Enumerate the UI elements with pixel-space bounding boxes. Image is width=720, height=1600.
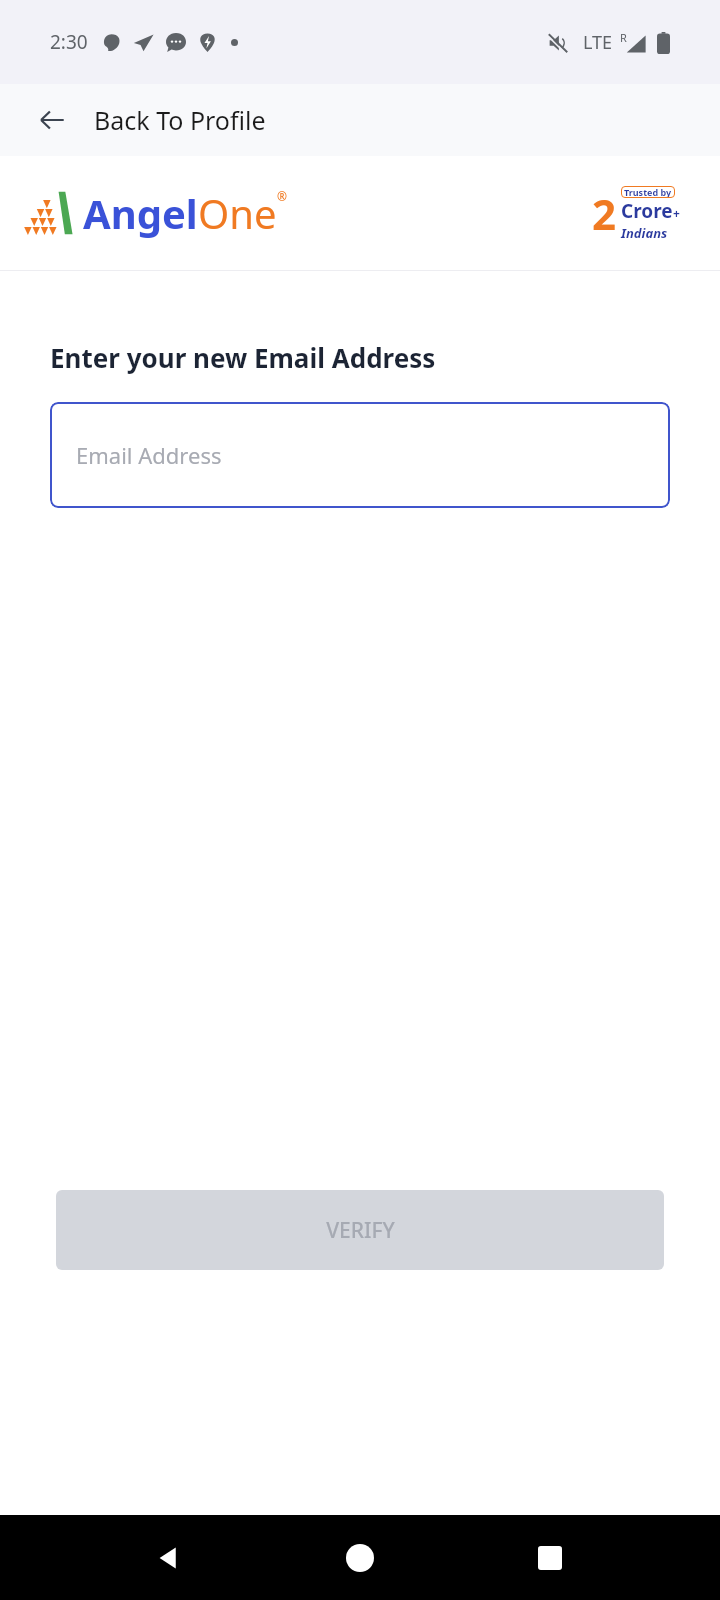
staticText: Angel — [83, 186, 198, 240]
staticText: R — [620, 30, 627, 45]
staticText: Indians — [621, 224, 668, 242]
button[interactable]: Home — [330, 1528, 390, 1588]
staticText: Enter your new Email Address — [50, 340, 436, 375]
staticText: Back To Profile — [94, 103, 266, 137]
staticText: Crore — [621, 198, 673, 224]
button[interactable]: VERIFY — [56, 1190, 664, 1270]
button[interactable]: Recent apps — [520, 1528, 580, 1588]
staticText: 2:30 — [50, 29, 88, 55]
button[interactable]: Back — [28, 96, 76, 144]
staticText: + — [673, 205, 680, 221]
staticText: One — [198, 186, 277, 240]
staticText: LTE — [583, 30, 613, 55]
staticText: Trusted by — [624, 186, 672, 198]
staticText: ® — [277, 188, 287, 204]
staticText: Email Address — [76, 440, 222, 470]
button[interactable]: Back — [140, 1528, 200, 1588]
staticText: VERIFY — [326, 1216, 395, 1245]
staticText: 2 — [592, 185, 617, 242]
button[interactable]: Email Address — [50, 402, 670, 508]
